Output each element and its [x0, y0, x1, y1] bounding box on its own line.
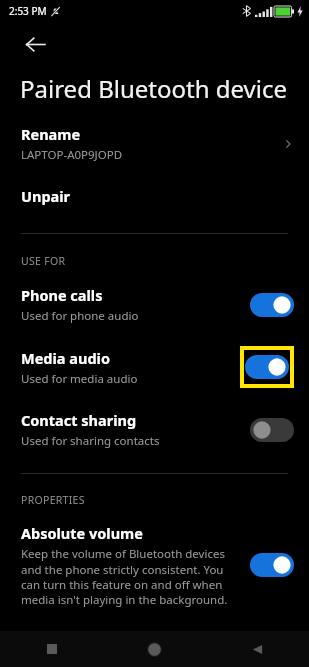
- button[interactable]: Back: [14, 23, 56, 65]
- staticText: Keep the volume of Bluetooth devices and…: [21, 546, 242, 607]
- button[interactable]: Rename: [0, 122, 309, 165]
- staticText: Media audio: [21, 348, 110, 368]
- button[interactable]: On: [245, 355, 289, 379]
- button[interactable]: On: [250, 293, 294, 317]
- staticText: 2:53 PM: [9, 4, 47, 18]
- staticText: PROPERTIES: [21, 493, 85, 507]
- button[interactable]: Recent apps: [0, 631, 103, 667]
- button[interactable]: Home: [103, 631, 206, 667]
- staticText: Unpair: [21, 186, 71, 206]
- button[interactable]: Absolute volume: [0, 521, 309, 609]
- button[interactable]: Contact sharing: [0, 408, 309, 451]
- staticText: Used for sharing contacts: [21, 433, 160, 449]
- staticText: Phone calls: [21, 285, 103, 305]
- button[interactable]: Back: [206, 631, 309, 667]
- button[interactable]: Media audio: [0, 344, 309, 390]
- staticText: Contact sharing: [21, 410, 137, 430]
- button[interactable]: Unpair: [0, 183, 309, 209]
- staticText: Used for media audio: [21, 371, 138, 387]
- staticText: Used for phone audio: [21, 308, 139, 324]
- staticText: Paired Bluetooth device: [20, 72, 287, 105]
- staticText: Absolute volume: [21, 523, 143, 543]
- staticText: LAPTOP-A0P9JOPD: [21, 147, 123, 163]
- staticText: USE FOR: [21, 254, 66, 268]
- button[interactable]: Phone calls: [0, 283, 309, 326]
- button[interactable]: Off: [250, 418, 294, 442]
- staticText: Rename: [21, 124, 81, 144]
- button[interactable]: On: [250, 553, 294, 577]
